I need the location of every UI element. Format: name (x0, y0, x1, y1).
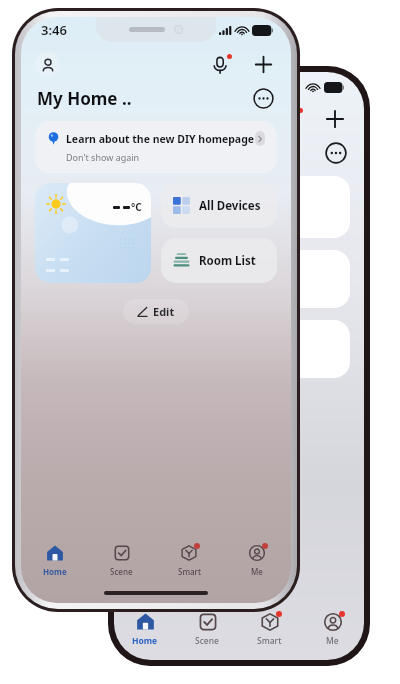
button[interactable]: Scene (176, 604, 238, 654)
staticText: Edit (153, 304, 175, 319)
button[interactable] (128, 176, 350, 238)
button[interactable]: Me (223, 537, 291, 583)
button[interactable]: Room List (161, 238, 277, 283)
button[interactable]: Smart (155, 537, 223, 583)
staticText: Home (132, 635, 158, 647)
staticText: Smart (178, 566, 201, 577)
staticText: vices (128, 270, 161, 288)
staticText: My Home .. (37, 87, 132, 110)
staticText: Home (43, 566, 67, 577)
staticText: °C (131, 200, 142, 214)
button[interactable]: Me (301, 604, 364, 654)
button[interactable]: Voice assistant (207, 51, 234, 78)
button[interactable]: Add device (250, 51, 277, 78)
staticText: Scene (110, 566, 133, 577)
staticText: Me (326, 635, 339, 647)
button[interactable]: List (128, 320, 350, 378)
staticText: Room List (199, 253, 256, 269)
button[interactable]: All Devices (161, 183, 277, 228)
button[interactable]: Voice assistant (278, 106, 304, 132)
button[interactable]: °C (35, 183, 151, 283)
staticText: 3:46 (41, 21, 67, 39)
button[interactable]: Edit (123, 299, 189, 324)
button[interactable]: Profile (35, 52, 60, 77)
button[interactable]: Smart (238, 604, 301, 654)
staticText: Scene (195, 635, 219, 647)
button[interactable]: Scene (88, 537, 155, 583)
button[interactable]: Learn about the new DIY homepage (35, 121, 277, 173)
staticText: Smart (257, 635, 282, 647)
button[interactable]: More options (324, 141, 348, 165)
button[interactable]: vices (128, 250, 350, 308)
button[interactable]: Home (21, 537, 88, 583)
button[interactable]: More options (252, 87, 275, 110)
button[interactable]: Don't show again (66, 151, 140, 163)
staticText: Learn about the new DIY homepage (66, 132, 255, 146)
staticText: Me (251, 566, 263, 577)
button[interactable]: Add (322, 106, 348, 132)
staticText: All Devices (199, 198, 261, 214)
button[interactable]: Home (114, 604, 176, 654)
